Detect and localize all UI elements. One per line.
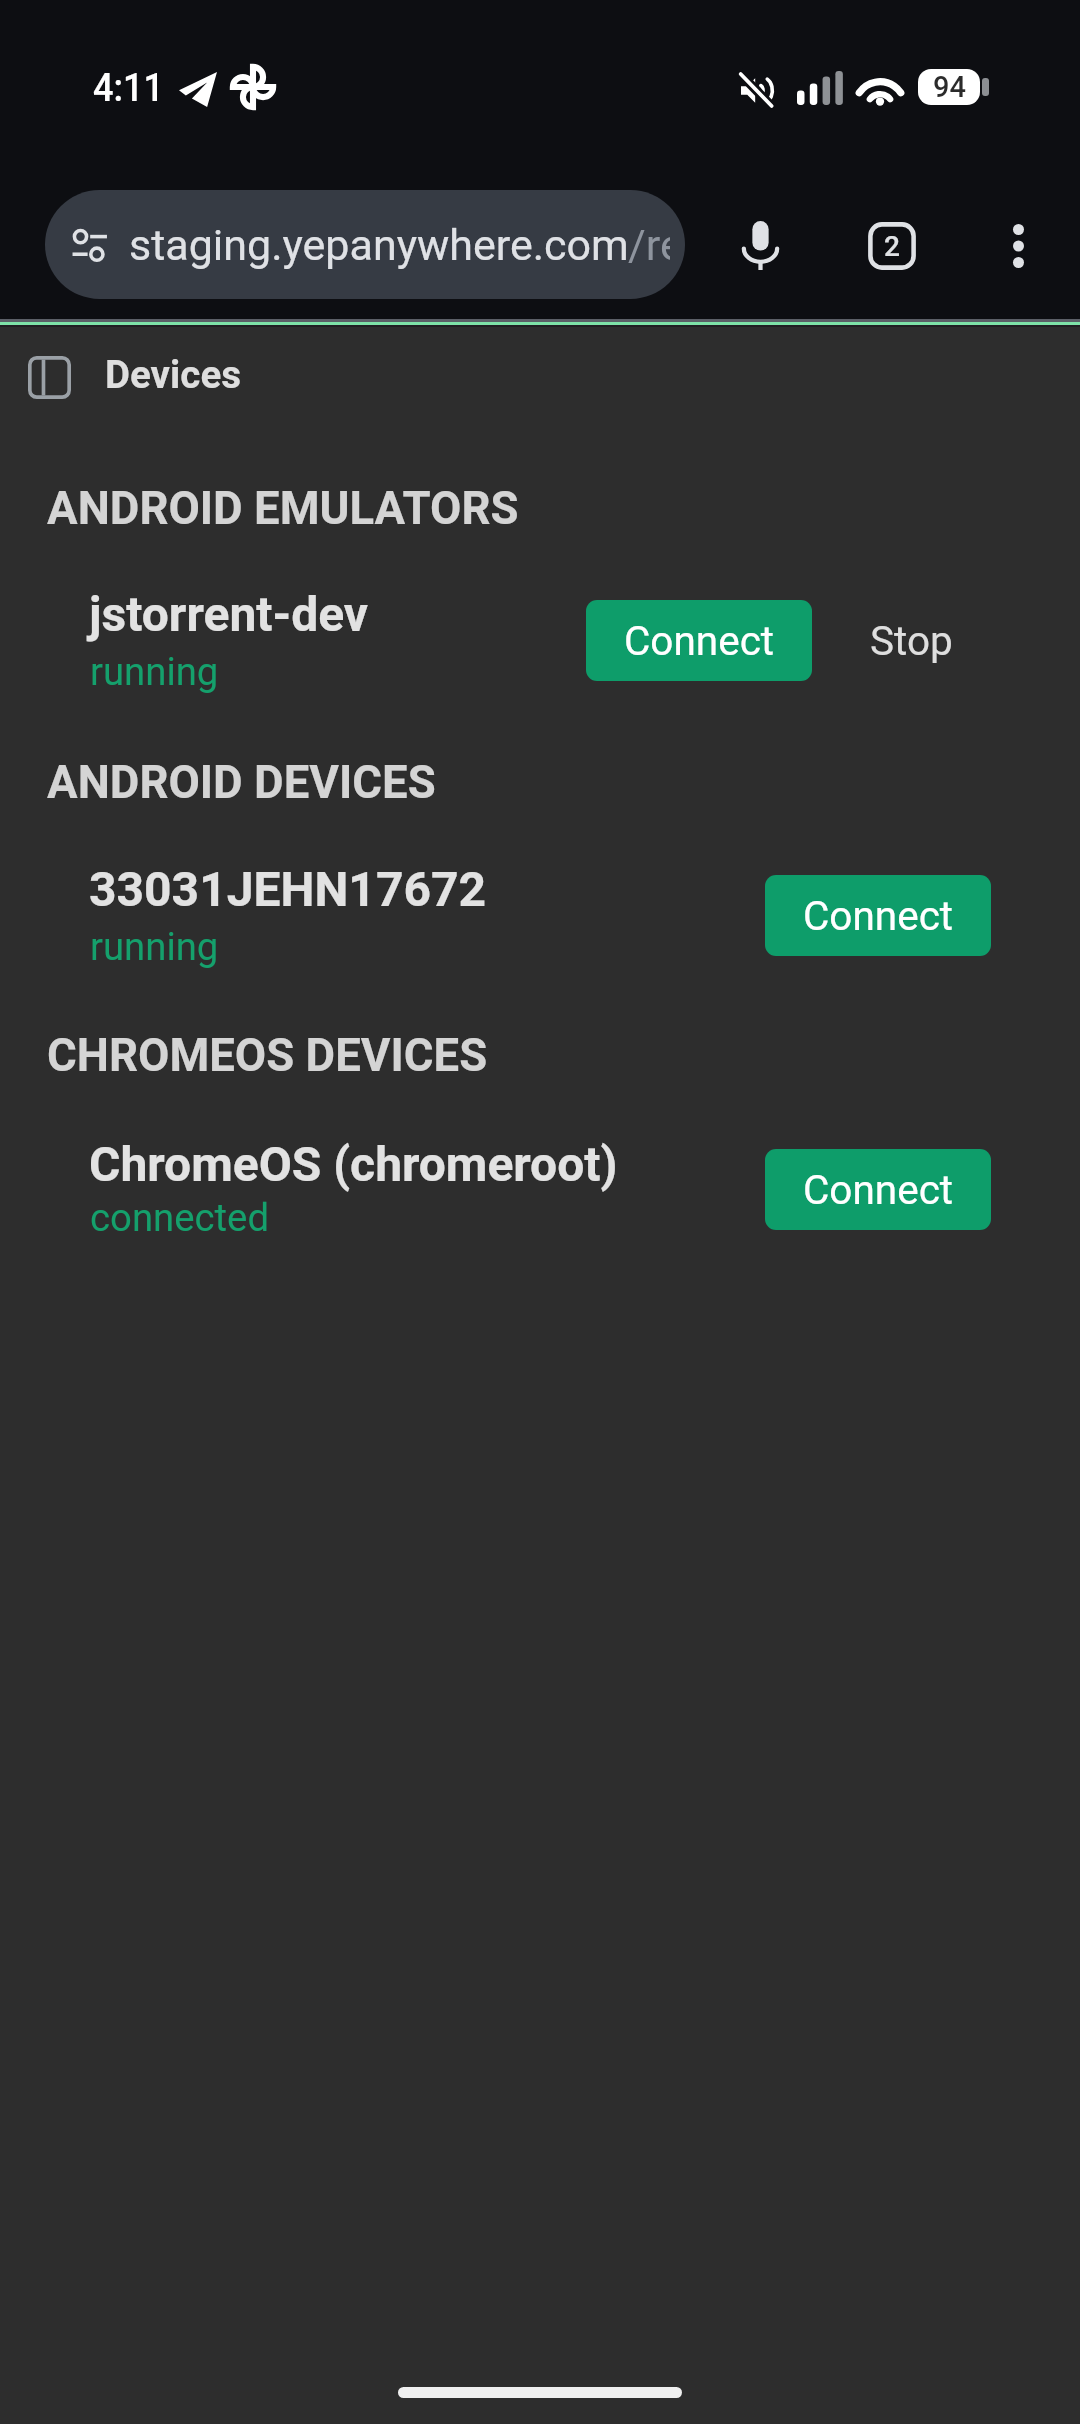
button[interactable]: Connect bbox=[765, 1149, 991, 1230]
staticText: staging.yepanywhere.com bbox=[129, 220, 629, 270]
staticText: ANDROID EMULATORS bbox=[47, 482, 519, 535]
staticText: running bbox=[90, 649, 219, 694]
button[interactable]: Toggle sidebar bbox=[12, 340, 86, 414]
staticText: ANDROID DEVICES bbox=[47, 756, 436, 809]
button[interactable] bbox=[45, 190, 685, 299]
staticText: CHROMEOS DEVICES bbox=[47, 1029, 488, 1082]
staticText: 94 bbox=[933, 70, 966, 104]
staticText: 2 bbox=[884, 230, 900, 263]
staticText: 33031JEHN17672 bbox=[89, 861, 487, 917]
staticText: jstorrent-dev bbox=[89, 586, 369, 642]
button[interactable]: Connect bbox=[586, 600, 812, 681]
button[interactable]: Voice search bbox=[712, 197, 808, 293]
staticText: 4:11 bbox=[93, 65, 164, 110]
staticText: /re bbox=[628, 220, 670, 270]
button[interactable]: Switch tabs bbox=[844, 198, 940, 294]
staticText: Devices bbox=[105, 352, 242, 397]
staticText: ChromeOS (chromeroot) bbox=[89, 1136, 618, 1192]
button[interactable]: Connect bbox=[765, 875, 991, 956]
staticText: Connect bbox=[624, 617, 775, 664]
button[interactable]: More options bbox=[970, 198, 1066, 294]
staticText: Stop bbox=[870, 617, 953, 664]
staticText: connected bbox=[90, 1195, 269, 1240]
staticText: Connect bbox=[803, 1166, 954, 1213]
staticText: Connect bbox=[803, 892, 954, 939]
button[interactable]: Stop bbox=[840, 600, 983, 681]
staticText: running bbox=[90, 924, 219, 969]
